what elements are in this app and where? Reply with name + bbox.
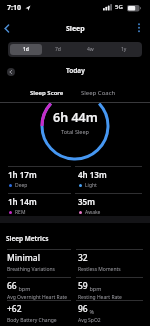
staticText: Resting Heart Rate — [78, 294, 122, 301]
button[interactable] — [7, 68, 15, 76]
staticText: Today — [66, 66, 85, 75]
staticText: REM — [15, 209, 26, 216]
staticText: 1d — [23, 46, 29, 53]
button[interactable]: Sleep Coach — [74, 85, 123, 100]
button[interactable]: 4w — [74, 44, 107, 55]
staticText: Sleep Coach — [81, 89, 116, 97]
button[interactable]: Sleep Score — [22, 85, 71, 100]
staticText: 59 — [78, 280, 88, 292]
staticText: Sleep Metrics — [6, 234, 49, 243]
staticText: 7d — [55, 46, 61, 53]
staticText: 5G — [115, 3, 123, 11]
staticText: Deep — [15, 182, 28, 189]
staticText: +62 — [7, 303, 22, 315]
staticText: 66 — [7, 280, 17, 292]
button[interactable] — [132, 20, 146, 36]
button[interactable]: 1h 14m — [8, 196, 68, 222]
staticText: 1y — [121, 46, 127, 53]
staticText: Sleep Score — [30, 89, 64, 97]
staticText: 4h 13m — [78, 169, 107, 180]
button[interactable]: 66 — [7, 280, 71, 306]
button[interactable]: 96 — [78, 303, 142, 326]
button[interactable]: 35m — [78, 196, 142, 222]
staticText: Light — [85, 182, 97, 189]
staticText: Avg Overnight Heart Rate — [7, 294, 68, 301]
staticText: % — [88, 308, 95, 315]
staticText: Total Sleep — [61, 128, 89, 135]
button[interactable]: 1y — [107, 44, 140, 55]
staticText: 6h 44m — [53, 109, 98, 126]
staticText: 4w — [87, 46, 94, 53]
staticText: bpm — [17, 285, 31, 292]
staticText: 1h 17m — [8, 169, 37, 180]
staticText: Breathing Variations — [7, 266, 55, 273]
button[interactable]: 7d — [42, 44, 74, 55]
staticText: Minimal — [7, 252, 40, 264]
staticText: 1h 14m — [8, 196, 37, 207]
button[interactable]: 1d — [10, 44, 42, 55]
button[interactable]: +62 — [7, 303, 71, 326]
staticText: Awake — [85, 209, 101, 216]
button[interactable]: Minimal — [7, 252, 71, 278]
button[interactable] — [0, 20, 16, 36]
staticText: 7:10 — [7, 3, 21, 13]
staticText: bpm — [88, 285, 102, 292]
staticText: Body Battery Change — [7, 317, 57, 324]
button[interactable]: 1h 17m — [8, 169, 68, 195]
staticText: 96 — [78, 303, 88, 315]
staticText: 32 — [78, 252, 88, 264]
button[interactable]: 4h 13m — [78, 169, 142, 195]
staticText: Avg SpO2 — [78, 317, 101, 324]
button[interactable]: 32 — [78, 252, 142, 278]
staticText: 35m — [78, 196, 95, 207]
button[interactable]: 59 — [78, 280, 142, 306]
staticText: Sleep — [66, 24, 85, 34]
staticText: Restless Moments — [78, 266, 121, 273]
